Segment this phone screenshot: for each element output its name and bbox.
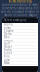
staticText: Mike [4,61,10,65]
button[interactable]: Delta [2,33,38,36]
button[interactable]: Juliet [2,52,38,55]
staticText: Alpha [4,23,12,26]
button[interactable]: Mike [2,61,38,65]
button[interactable]: Bravo [2,26,38,29]
staticText: ACME INDUSTRIES [8,0,31,3]
button[interactable]: Golf [2,42,38,45]
staticText: Golf [4,42,10,45]
button[interactable]: Kilo [2,55,38,58]
staticText: Echo [4,35,10,39]
staticText: labore et dolore magna [3,13,36,17]
button[interactable]: Echo [2,36,38,39]
button[interactable]: Select a category [2,17,38,23]
staticText: consectetur adipiscing elit [1,6,38,10]
staticText: Delta [4,32,11,36]
button[interactable]: Alpha [2,23,38,26]
staticText: Foxtrot [4,39,13,42]
staticText: Kilo [4,55,10,58]
button[interactable]: Foxtrot [2,39,38,42]
staticText: Select a category [4,18,26,22]
staticText: Juliet [4,51,12,55]
staticText: India [4,48,11,52]
staticText: Lima [4,58,9,61]
staticText: Bravo [4,26,11,29]
button[interactable]: Lima [2,58,38,61]
button[interactable]: India [2,49,38,52]
staticText: Hotel [4,45,12,49]
button[interactable]: Hotel [2,45,38,49]
staticText: Charlie [4,29,14,33]
button[interactable]: Charlie [2,29,38,33]
staticText: sed do eiusmod tempor in [1,10,39,13]
staticText: Lorem ipsum dolor sit amet [1,3,38,6]
